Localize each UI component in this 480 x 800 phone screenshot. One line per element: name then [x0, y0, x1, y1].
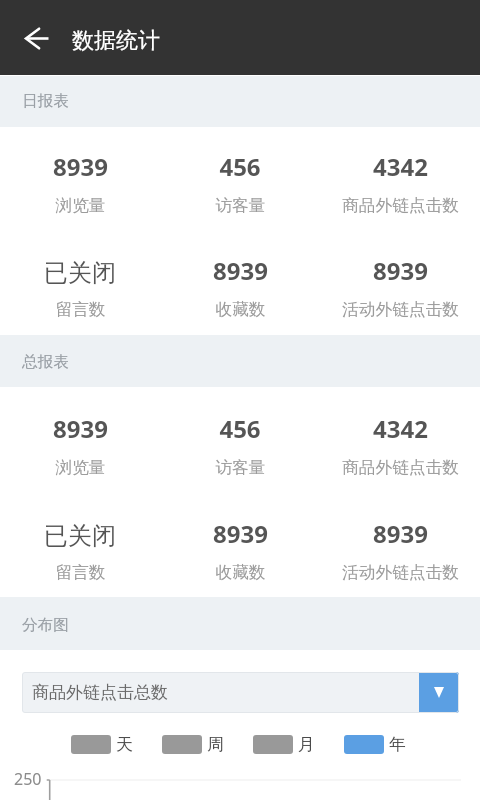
staticText: 8939	[213, 254, 268, 287]
button[interactable]: 4342	[320, 387, 480, 492]
staticText: 8939	[213, 517, 268, 550]
button[interactable]: 8939	[0, 387, 160, 492]
staticText: 456	[219, 412, 261, 445]
staticText: 8939	[53, 150, 108, 183]
staticText: 访客量	[215, 195, 266, 216]
staticText: 分布图	[22, 615, 69, 635]
button[interactable]: 周	[162, 734, 224, 755]
staticText: 456	[219, 150, 261, 183]
staticText: 日报表	[22, 91, 69, 111]
staticText: 4342	[373, 150, 428, 183]
button[interactable]: 月	[253, 734, 315, 755]
button[interactable]: 年	[344, 734, 406, 755]
staticText: 商品外链点击总数	[32, 682, 419, 703]
button[interactable]: 8939	[0, 127, 160, 231]
staticText: 收藏数	[215, 562, 266, 583]
staticText: 总报表	[22, 352, 69, 372]
staticText: 活动外链点击数	[342, 299, 459, 320]
button[interactable]: Back	[0, 0, 72, 75]
button[interactable]: 已关闭	[0, 492, 160, 597]
staticText: 留言数	[55, 299, 106, 320]
staticText: 商品外链点击数	[342, 195, 459, 216]
staticText: 数据统计	[72, 27, 160, 55]
staticText: 浏览量	[55, 195, 106, 216]
staticText: 访客量	[215, 457, 266, 478]
button[interactable]: 8939	[160, 492, 320, 597]
staticText: 8939	[53, 412, 108, 445]
staticText: 4342	[373, 412, 428, 445]
staticText: 8939	[373, 517, 428, 550]
button[interactable]: 商品外链点击总数	[22, 672, 459, 713]
staticText: 已关闭	[44, 258, 116, 288]
staticText: 月	[298, 734, 315, 755]
button[interactable]: 4342	[320, 127, 480, 231]
button[interactable]: 天	[71, 734, 133, 755]
staticText: 留言数	[55, 562, 106, 583]
staticText: 浏览量	[55, 457, 106, 478]
staticText: 天	[116, 734, 133, 755]
button[interactable]: 已关闭	[0, 231, 160, 335]
staticText: 年	[389, 734, 406, 755]
button[interactable]: 8939	[320, 492, 480, 597]
staticText: 活动外链点击数	[342, 562, 459, 583]
staticText: 周	[207, 734, 224, 755]
button[interactable]: 456	[160, 127, 320, 231]
staticText: 8939	[373, 254, 428, 287]
staticText: 收藏数	[215, 299, 266, 320]
button[interactable]: 456	[160, 387, 320, 492]
staticText: 商品外链点击数	[342, 457, 459, 478]
staticText: 已关闭	[44, 521, 116, 551]
button[interactable]: 8939	[160, 231, 320, 335]
staticText: 250	[14, 768, 42, 790]
button[interactable]: Open dropdown	[419, 672, 459, 713]
button[interactable]: 8939	[320, 231, 480, 335]
